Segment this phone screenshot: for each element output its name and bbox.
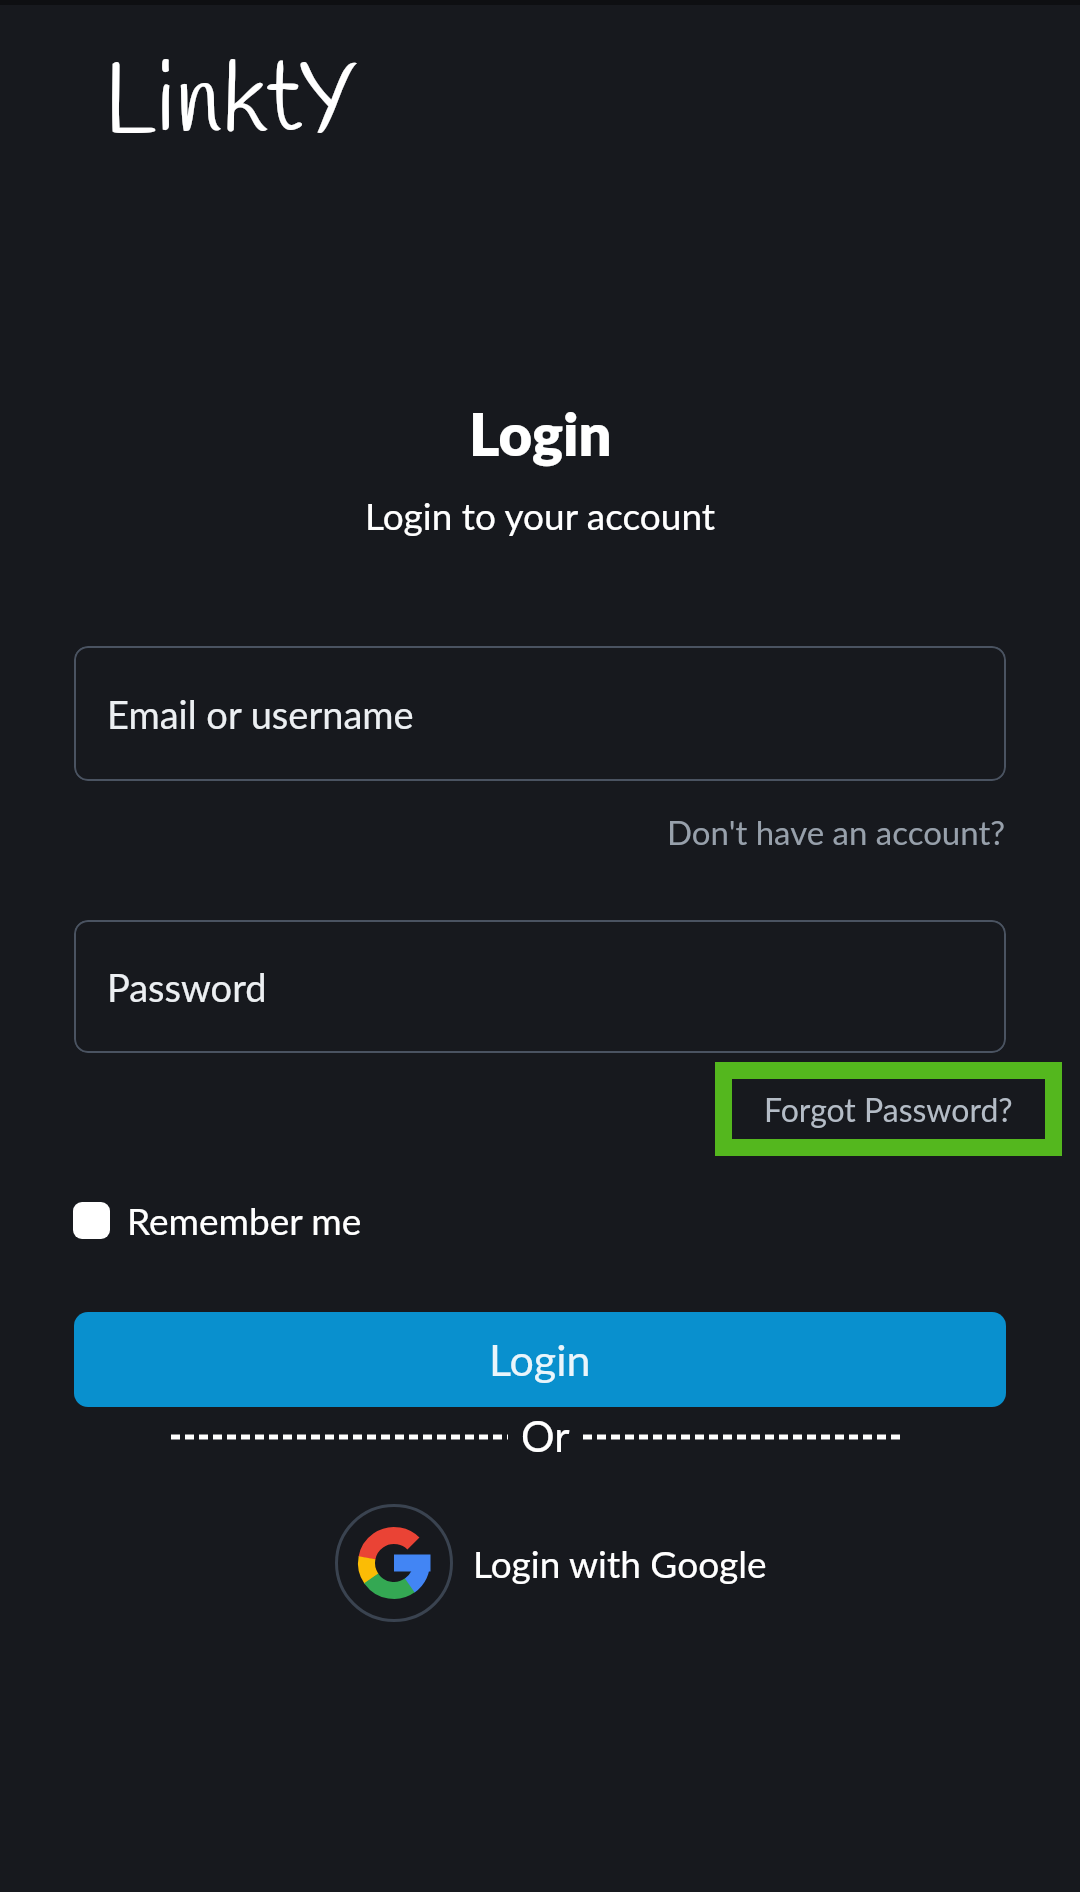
staticText: Email or username — [107, 691, 414, 737]
staticText: Remember me — [127, 1198, 362, 1242]
button[interactable]: Forgot Password? — [715, 1062, 1062, 1156]
staticText: Forgot Password? — [764, 1090, 1013, 1128]
button[interactable]: Login — [74, 1312, 1006, 1407]
staticText: Login — [489, 1334, 591, 1386]
button[interactable]: Login with Google — [334, 1503, 767, 1623]
button[interactable]: Don't have an account? — [667, 812, 1006, 852]
staticText: Don't have an account? — [667, 812, 1006, 852]
staticText: Password — [107, 964, 267, 1010]
button[interactable]: Email or username — [74, 646, 1006, 781]
staticText: Login — [469, 399, 612, 469]
staticText: Login with Google — [473, 1541, 767, 1585]
staticText: LinktY — [104, 40, 357, 160]
staticText: Login to your account — [365, 493, 716, 537]
staticText: Or — [521, 1411, 570, 1461]
button[interactable]: Remember me — [73, 1190, 362, 1250]
button[interactable]: Password — [74, 920, 1006, 1053]
